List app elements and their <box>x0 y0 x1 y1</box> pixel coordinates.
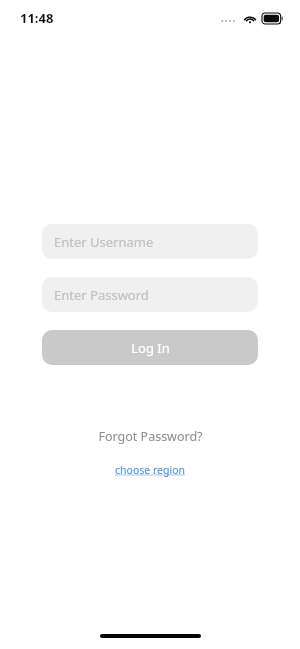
staticText: Log In <box>131 339 170 357</box>
other: Battery <box>262 13 283 24</box>
staticText: Enter Password <box>54 286 149 304</box>
staticText: choose region <box>115 463 185 477</box>
button[interactable]: Enter Username <box>42 224 258 259</box>
staticText: Enter Username <box>54 233 154 251</box>
button[interactable]: Enter Password <box>42 277 258 312</box>
button[interactable]: Log In <box>42 330 258 365</box>
button[interactable]: choose region <box>107 461 193 479</box>
button[interactable]: Forgot Password? <box>90 425 211 448</box>
staticText: Forgot Password? <box>98 428 203 445</box>
staticText: 11:48 <box>20 9 54 27</box>
